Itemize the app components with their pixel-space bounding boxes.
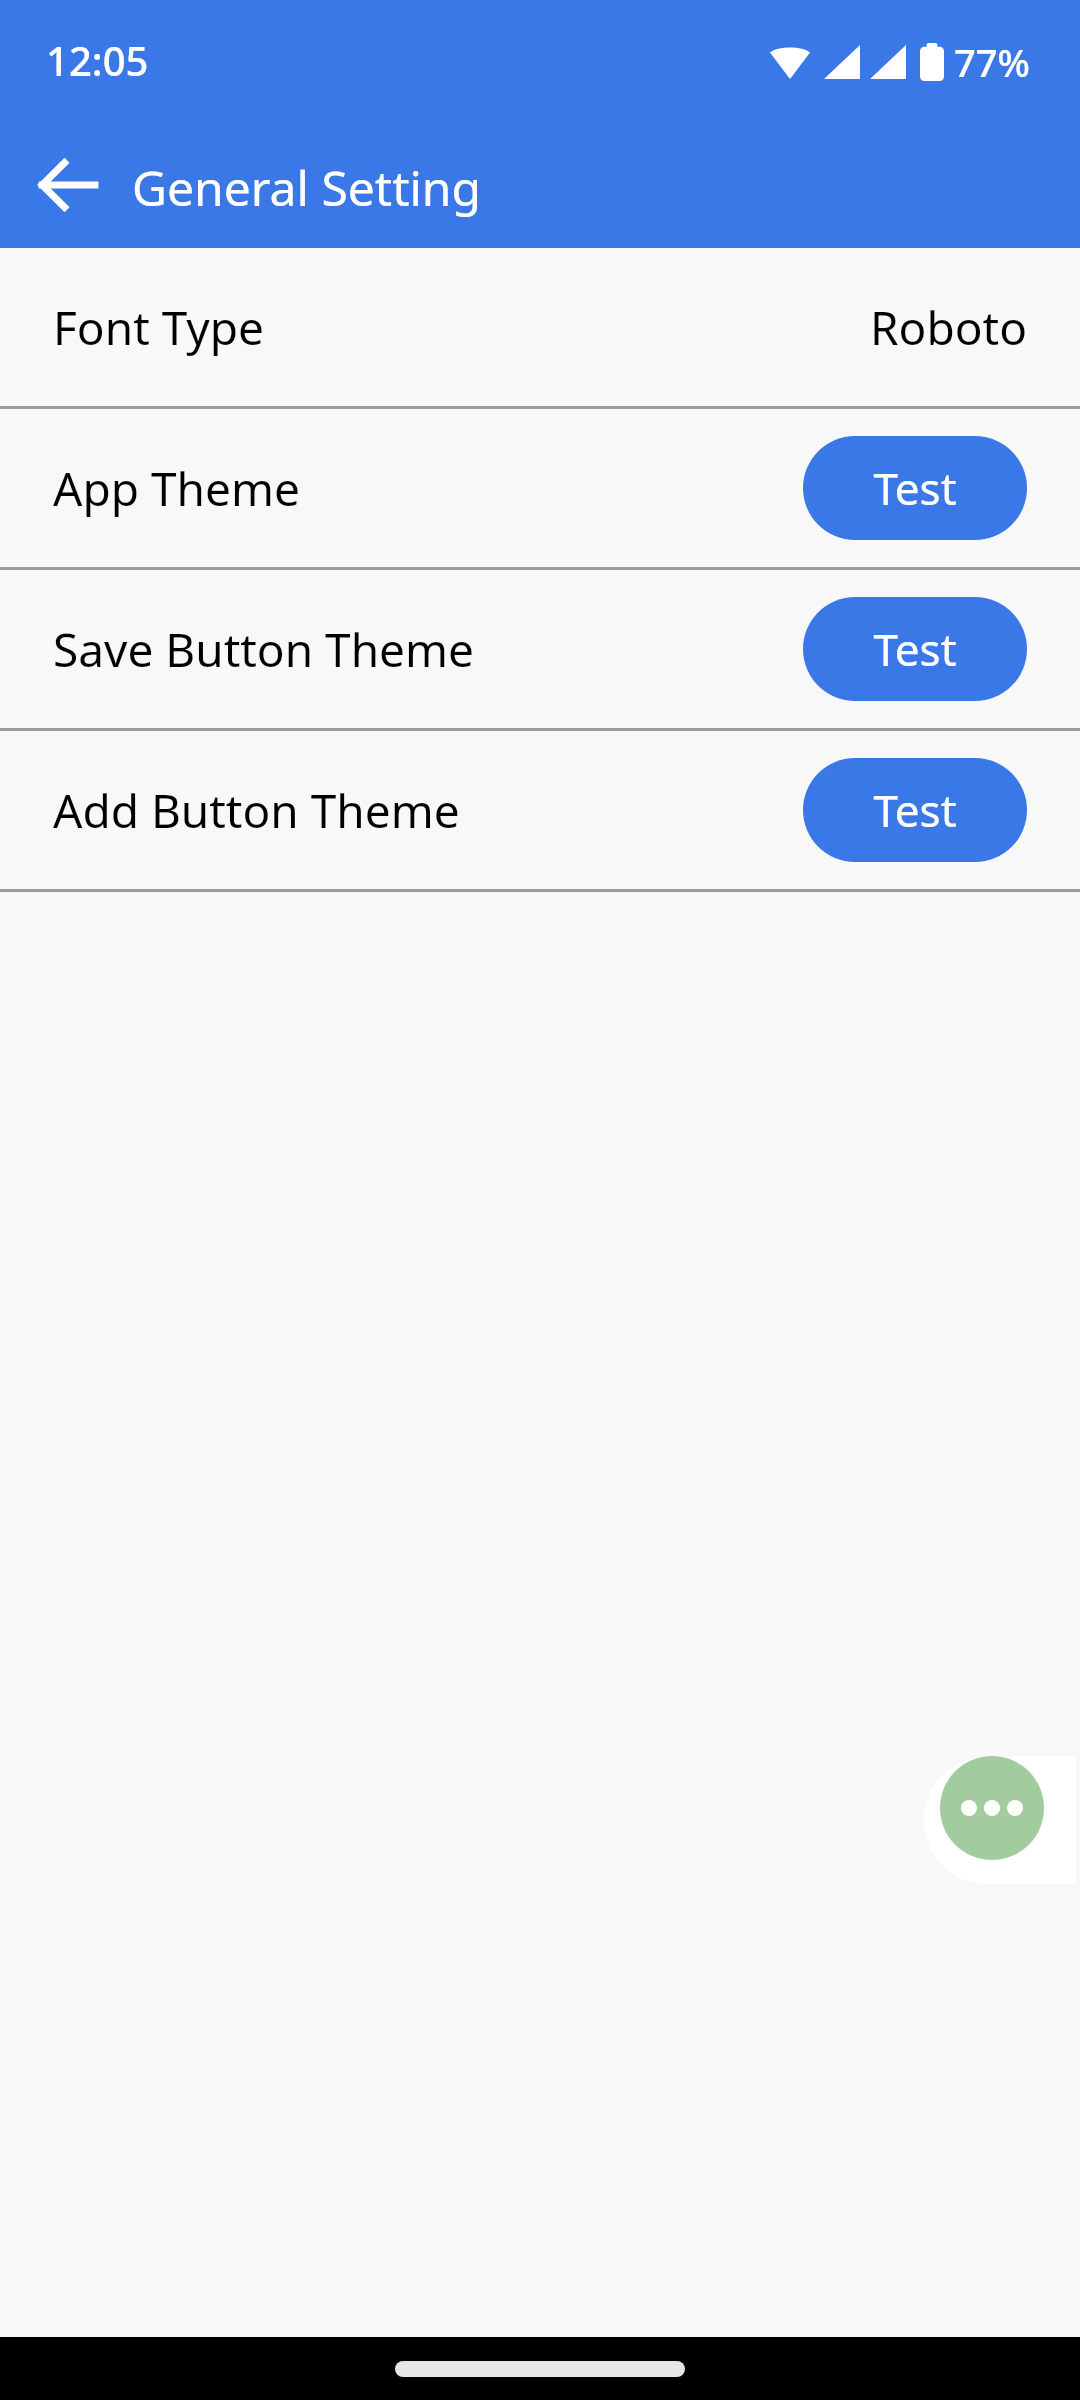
staticText: Test	[873, 458, 957, 518]
button[interactable]: Test	[803, 597, 1027, 701]
staticText: 12:05	[46, 33, 149, 87]
button[interactable]: Back	[19, 137, 115, 233]
staticText: Font Type	[53, 296, 265, 359]
button[interactable]: Test	[803, 758, 1027, 862]
staticText: Add Button Theme	[53, 779, 460, 842]
button[interactable]: App Theme	[0, 409, 1080, 567]
button[interactable]: More options	[940, 1756, 1044, 1860]
staticText: Test	[873, 619, 957, 679]
staticText: Test	[873, 780, 957, 840]
staticText: General Setting	[132, 155, 482, 220]
staticText: Roboto	[870, 296, 1027, 359]
button[interactable]: Font Type	[0, 248, 1080, 406]
staticText: App Theme	[53, 457, 300, 520]
button[interactable]: Add Button Theme	[0, 731, 1080, 889]
button[interactable]: Save Button Theme	[0, 570, 1080, 728]
button[interactable]: Test	[803, 436, 1027, 540]
staticText: Save Button Theme	[53, 618, 474, 681]
staticText: 77%	[954, 36, 1030, 88]
